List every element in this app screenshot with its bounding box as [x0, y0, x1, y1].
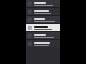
button[interactable]: Settings — [26, 40, 60, 47]
button[interactable]: Bedtime — [26, 32, 60, 39]
other: Alarm — [28, 2, 32, 6]
button[interactable]: World clock — [26, 24, 60, 31]
button[interactable]: Timer — [26, 8, 60, 15]
other: World clock — [28, 26, 32, 30]
other: Settings — [28, 42, 32, 46]
button[interactable]: Stopwatch — [26, 16, 60, 23]
button[interactable]: Alarm — [26, 0, 60, 7]
other: Bedtime — [28, 34, 32, 38]
other: Stopwatch — [28, 18, 32, 22]
other: Timer — [28, 10, 32, 14]
